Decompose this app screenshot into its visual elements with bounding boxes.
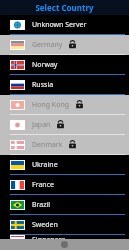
staticText: Ukraine [32,160,58,170]
button[interactable]: Ukraine [0,155,129,174]
staticText: Norway [32,60,58,70]
button[interactable]: Norway [0,55,129,74]
staticText: Germany [32,40,63,50]
button[interactable]: Home [61,241,68,248]
staticText: Russia [32,80,54,90]
staticText: Denmark [32,140,63,150]
staticText: Singapore [32,235,66,239]
button[interactable]: Germany [0,35,129,54]
staticText: Select Country [35,2,94,13]
button[interactable]: France [0,175,129,194]
button[interactable]: Denmark [0,135,129,154]
staticText: Brazil [32,200,51,210]
button[interactable]: Russia [0,75,129,94]
staticText: Japan [32,120,51,130]
button[interactable]: Sweden [0,215,129,234]
button[interactable]: Brazil [0,195,129,214]
button[interactable]: Hong Kong [0,95,129,114]
staticText: France [32,180,54,190]
button[interactable]: Singapore [0,235,129,239]
staticText: Sweden [32,220,58,230]
staticText: Hong Kong [32,100,70,110]
staticText: Unknown Server [32,20,87,30]
button[interactable]: Japan [0,115,129,134]
button[interactable]: Unknown Server [0,15,129,34]
